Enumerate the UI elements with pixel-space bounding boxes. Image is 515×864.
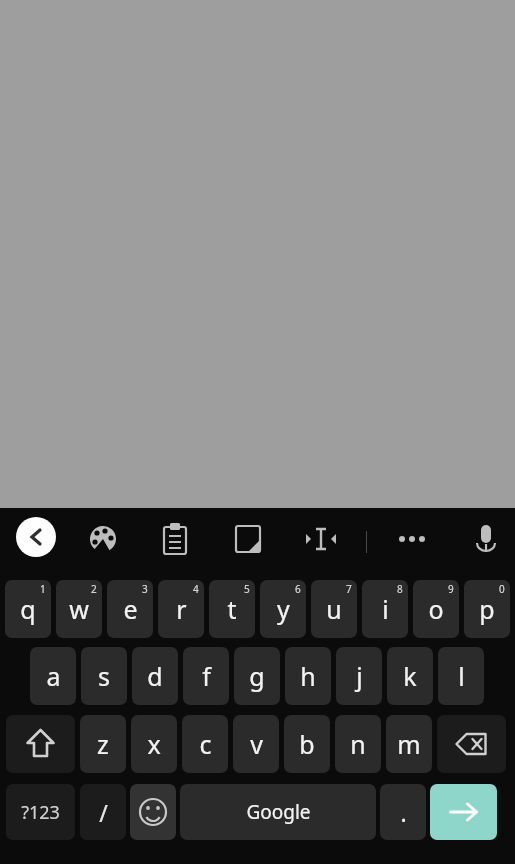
staticText: w — [69, 592, 89, 626]
staticText: j — [356, 659, 363, 693]
button[interactable]: w — [56, 580, 102, 638]
button[interactable]: g — [234, 647, 280, 705]
button[interactable]: Emoji — [130, 784, 176, 840]
button[interactable]: y — [260, 580, 306, 638]
staticText: q — [20, 592, 36, 626]
staticText: k — [403, 659, 417, 693]
button[interactable]: t — [209, 580, 255, 638]
button[interactable]: Backspace — [437, 715, 506, 773]
staticText: u — [326, 592, 342, 626]
staticText: i — [382, 592, 389, 626]
staticText: t — [227, 592, 237, 626]
staticText: 9 — [448, 582, 454, 596]
staticText: 7 — [346, 582, 352, 596]
staticText: b — [299, 727, 315, 761]
button[interactable]: Text editing — [299, 517, 343, 561]
staticText: v — [250, 727, 263, 761]
staticText: . — [400, 797, 407, 828]
button[interactable]: / — [80, 784, 126, 840]
button[interactable]: f — [183, 647, 229, 705]
button[interactable]: Google — [180, 784, 376, 840]
staticText: d — [147, 659, 163, 693]
button[interactable]: n — [335, 715, 381, 773]
button[interactable]: i — [362, 580, 408, 638]
staticText: 2 — [91, 582, 97, 596]
staticText: c — [199, 727, 212, 761]
button[interactable]: Voice input — [464, 517, 508, 561]
button[interactable]: b — [284, 715, 330, 773]
staticText: 8 — [397, 582, 403, 596]
staticText: l — [458, 659, 465, 693]
button[interactable]: k — [387, 647, 433, 705]
button[interactable]: . — [380, 784, 426, 840]
staticText: x — [147, 727, 161, 761]
button[interactable]: Stickers — [226, 517, 270, 561]
button[interactable]: s — [81, 647, 127, 705]
button[interactable]: m — [386, 715, 432, 773]
staticText: s — [98, 659, 110, 693]
button[interactable]: q — [5, 580, 51, 638]
button[interactable]: l — [438, 647, 484, 705]
staticText: e — [123, 592, 138, 626]
button[interactable]: v — [233, 715, 279, 773]
staticText: n — [350, 727, 366, 761]
staticText: h — [300, 659, 316, 693]
button[interactable]: u — [311, 580, 357, 638]
staticText: ?123 — [21, 800, 60, 825]
staticText: 0 — [499, 582, 505, 596]
button[interactable]: j — [336, 647, 382, 705]
button[interactable]: d — [132, 647, 178, 705]
button[interactable]: x — [131, 715, 177, 773]
button[interactable]: Shift — [6, 715, 75, 773]
staticText: r — [176, 592, 187, 626]
button[interactable]: p — [464, 580, 510, 638]
staticText: o — [428, 592, 444, 626]
button[interactable]: Theme — [81, 517, 125, 561]
staticText: Google — [246, 799, 311, 825]
staticText: y — [277, 592, 290, 626]
staticText: / — [99, 797, 108, 828]
button[interactable]: o — [413, 580, 459, 638]
staticText: m — [397, 727, 421, 761]
button[interactable]: e — [107, 580, 153, 638]
button[interactable]: ?123 — [6, 784, 75, 840]
staticText: a — [46, 659, 61, 693]
staticText: 6 — [295, 582, 301, 596]
staticText: 3 — [142, 582, 148, 596]
button[interactable]: r — [158, 580, 204, 638]
staticText: g — [249, 659, 265, 693]
button[interactable]: z — [80, 715, 126, 773]
button[interactable]: h — [285, 647, 331, 705]
button[interactable]: c — [182, 715, 228, 773]
button[interactable]: a — [30, 647, 76, 705]
button[interactable]: Back — [16, 517, 56, 557]
staticText: 1 — [40, 582, 46, 596]
button[interactable]: More options — [390, 517, 434, 561]
staticText: 5 — [244, 582, 250, 596]
button[interactable]: Enter — [430, 784, 497, 840]
staticText: 4 — [193, 582, 199, 596]
staticText: z — [97, 727, 109, 761]
staticText: f — [202, 659, 211, 693]
button[interactable]: Clipboard — [153, 517, 197, 561]
staticText: p — [479, 592, 495, 626]
